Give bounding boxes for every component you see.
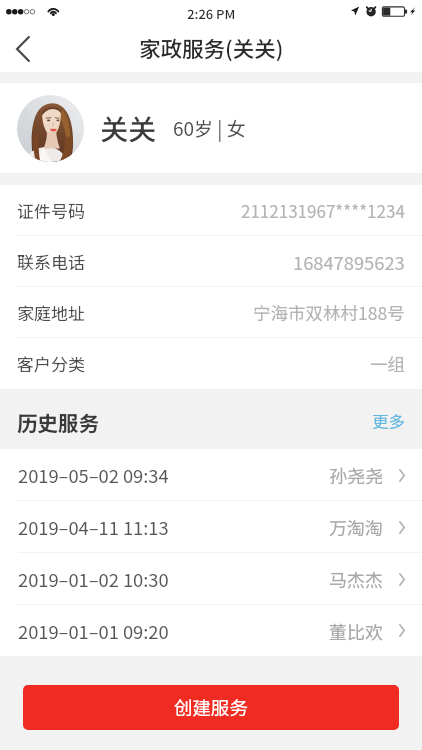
staticText: 宁海市双林村188号 xyxy=(253,300,405,325)
staticText: 证件号码 xyxy=(17,198,85,223)
staticText: 2:26 PM xyxy=(187,4,236,23)
button[interactable]: 创建服务 xyxy=(23,685,399,730)
button[interactable]: 2019–04–11 11:13 xyxy=(0,501,422,553)
staticText: 2019–01–02 10:30 xyxy=(18,566,169,592)
button[interactable]: 更多 xyxy=(355,399,422,443)
staticText: 历史服务 xyxy=(17,407,99,437)
staticText: 2112131967****1234 xyxy=(241,198,405,223)
staticText: 马杰杰 xyxy=(329,566,383,592)
staticText: 万淘淘 xyxy=(329,514,383,540)
staticText: 孙尧尧 xyxy=(329,462,383,488)
staticText: 一组 xyxy=(370,351,405,376)
button[interactable]: 2019–01–01 09:20 xyxy=(0,605,422,656)
staticText: 16847895623 xyxy=(293,249,405,275)
staticText: 2019–01–01 09:20 xyxy=(18,618,169,644)
staticText: 更多 xyxy=(372,409,405,433)
staticText: 2019–05–02 09:34 xyxy=(18,462,169,488)
staticText: 家政服务(关关) xyxy=(139,32,284,63)
staticText: 客户分类 xyxy=(17,351,85,376)
staticText: 董比欢 xyxy=(329,618,383,644)
button[interactable]: 2019–01–02 10:30 xyxy=(0,553,422,605)
staticText: 联系电话 xyxy=(17,249,85,274)
staticText: 创建服务 xyxy=(174,694,249,721)
button[interactable]: Back xyxy=(0,26,46,72)
staticText: 60岁 | 女 xyxy=(173,114,246,142)
staticText: 关关 xyxy=(100,108,157,149)
button[interactable]: 2019–05–02 09:34 xyxy=(0,449,422,501)
staticText: 2019–04–11 11:13 xyxy=(18,514,169,540)
staticText: 家庭地址 xyxy=(17,300,85,325)
